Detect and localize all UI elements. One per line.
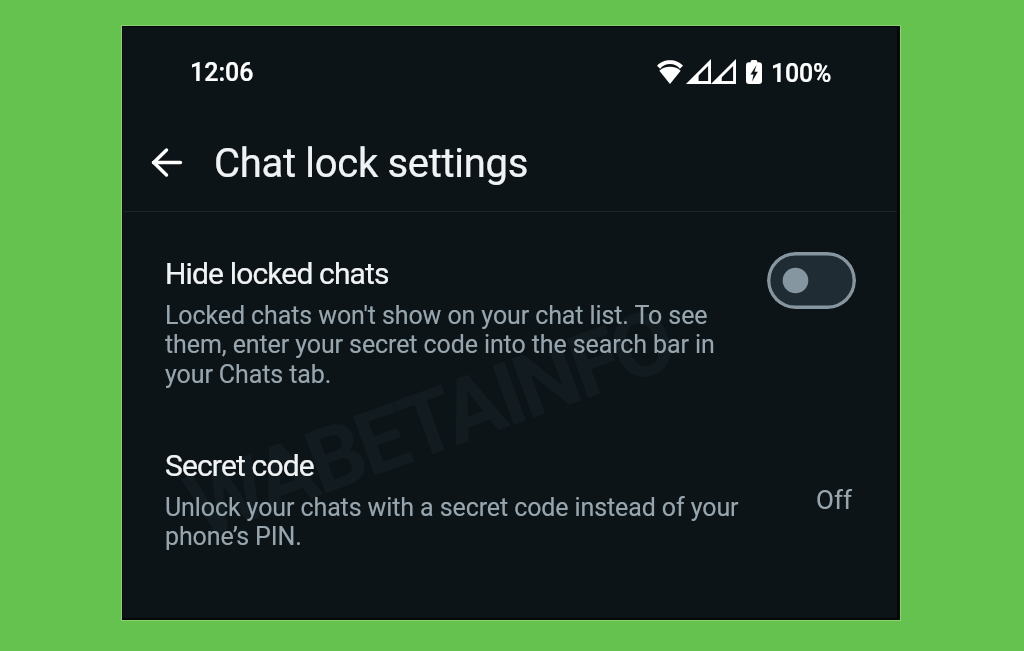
staticText: 100%	[771, 59, 832, 88]
button[interactable]: Back	[138, 134, 194, 190]
staticText: Secret code	[165, 448, 314, 483]
staticText: Chat lock settings	[214, 140, 529, 187]
staticText: Off	[816, 485, 852, 515]
staticText: Hide locked chats	[165, 256, 389, 291]
staticText: Locked chats won't show on your chat lis…	[165, 301, 727, 390]
button[interactable]: Secret code	[123, 437, 897, 561]
button[interactable]: Hide locked chats	[767, 252, 856, 309]
staticText: 12:06	[190, 58, 254, 87]
staticText: WABETAINFO	[172, 287, 685, 559]
staticText: Unlock your chats with a secret code ins…	[165, 493, 763, 552]
button[interactable]: Hide locked chats	[123, 245, 897, 397]
